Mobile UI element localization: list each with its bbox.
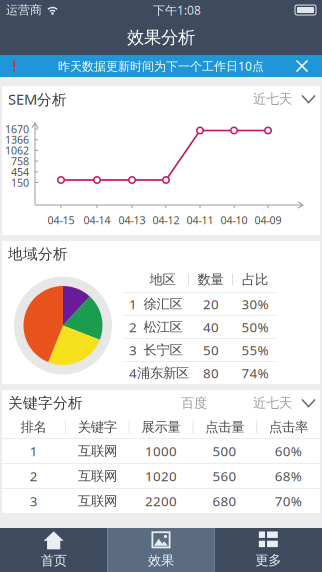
staticText: 地域分析	[8, 245, 68, 263]
button[interactable]: 近七天	[253, 390, 316, 416]
staticText: 500	[213, 442, 237, 460]
staticText: 60%	[275, 442, 302, 460]
button[interactable]: 效果	[107, 528, 215, 572]
staticText: 互联网	[78, 443, 117, 459]
staticText: 数量	[197, 271, 223, 288]
staticText: 70%	[275, 492, 302, 510]
staticText: 1	[30, 442, 38, 460]
staticText: 4	[129, 364, 137, 382]
staticText: 1062	[5, 143, 29, 157]
staticText: 04-11	[186, 213, 213, 227]
staticText: 运营商	[6, 3, 42, 17]
staticText: 占比	[242, 271, 268, 288]
staticText: 效果	[148, 552, 174, 569]
staticText: 首页	[41, 552, 67, 569]
staticText: 徐汇区	[143, 296, 182, 312]
staticText: 效果分析	[127, 27, 195, 48]
staticText: 74%	[241, 364, 268, 382]
staticText: 关键字分析	[8, 394, 83, 412]
staticText: 2	[129, 318, 137, 336]
staticText: 40	[203, 318, 219, 336]
staticText: 1020	[145, 467, 177, 485]
staticText: 68%	[275, 467, 302, 485]
staticText: 昨天数据更新时间为下一个工作日10点	[58, 58, 264, 74]
button[interactable]: 关闭提示	[282, 55, 322, 77]
staticText: 04-09	[254, 213, 281, 227]
staticText: SEM分析	[8, 89, 67, 109]
staticText: 04-10	[220, 213, 247, 227]
staticText: 3	[30, 492, 38, 510]
staticText: 更多	[255, 552, 281, 568]
staticText: 04-12	[152, 213, 179, 227]
staticText: 2200	[145, 492, 177, 510]
staticText: 1670	[5, 122, 29, 136]
staticText: 680	[213, 492, 237, 510]
staticText: 点击率	[269, 419, 308, 435]
staticText: 点击量	[205, 419, 244, 435]
staticText: 50	[203, 341, 219, 359]
staticText: 互联网	[78, 468, 117, 484]
staticText: 150	[11, 175, 29, 190]
staticText: 近七天	[253, 395, 292, 411]
staticText: 2	[30, 467, 38, 485]
staticText: 04-13	[118, 213, 145, 227]
staticText: 关键字	[78, 419, 117, 435]
staticText: 1	[129, 295, 137, 313]
staticText: 百度	[181, 395, 207, 411]
staticText: 560	[213, 467, 237, 485]
staticText: 展示量	[141, 419, 180, 435]
staticText: 地区	[149, 271, 175, 288]
staticText: 1366	[5, 133, 29, 147]
button[interactable]: 百度	[164, 390, 224, 416]
staticText: 04-15	[47, 213, 74, 227]
staticText: 758	[11, 154, 29, 168]
button[interactable]: 更多	[215, 528, 322, 572]
staticText: 下午1:08	[153, 2, 201, 18]
staticText: 20	[203, 295, 219, 313]
staticText: 04-14	[83, 213, 110, 227]
staticText: 松江区	[143, 319, 182, 335]
staticText: 454	[11, 165, 29, 179]
button[interactable]: 首页	[0, 528, 107, 572]
staticText: 30%	[241, 295, 268, 313]
staticText: 3	[129, 341, 137, 359]
staticText: 1000	[145, 442, 177, 460]
staticText: 浦东新区	[137, 365, 189, 381]
staticText: 长宁区	[143, 342, 182, 358]
button[interactable]: 近七天	[253, 86, 316, 112]
staticText: 50%	[241, 318, 268, 336]
staticText: 互联网	[78, 493, 117, 509]
staticText: 80	[203, 364, 219, 382]
staticText: 55%	[241, 341, 268, 359]
staticText: 近七天	[253, 91, 292, 107]
staticText: 排名	[20, 419, 46, 435]
